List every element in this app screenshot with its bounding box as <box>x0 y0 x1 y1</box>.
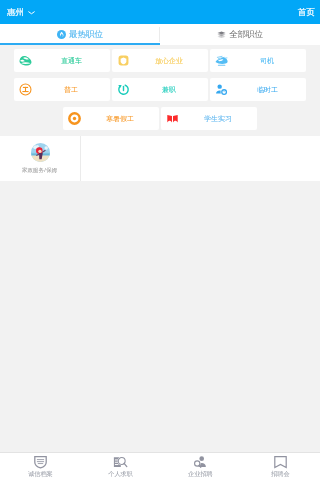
staticText: 首页 <box>298 7 315 18</box>
staticText: 直通车 <box>61 56 82 65</box>
button[interactable]: 普工 <box>14 78 110 101</box>
button[interactable]: 最热职位 <box>0 24 159 45</box>
button[interactable]: 寒暑假工 <box>63 107 159 130</box>
staticText: 放心企业 <box>155 56 183 65</box>
button[interactable]: 全部职位 <box>160 24 320 45</box>
button[interactable]: 招聘会 <box>240 453 320 480</box>
button[interactable]: 司机 <box>210 49 306 72</box>
staticText: 寒暑假工 <box>106 114 134 123</box>
staticText: 家政服务/保姆 <box>22 166 58 174</box>
button[interactable]: 惠州 <box>0 0 41 24</box>
button[interactable]: 学生实习 <box>161 107 257 130</box>
staticText: 普工 <box>64 85 78 94</box>
button[interactable]: 临时工 <box>210 78 306 101</box>
staticText: 全部职位 <box>229 29 263 40</box>
staticText: 惠州 <box>7 7 24 18</box>
button[interactable]: 兼职 <box>112 78 208 101</box>
button[interactable]: 直通车 <box>14 49 110 72</box>
button[interactable]: 企业招聘 <box>160 453 240 480</box>
button[interactable]: 首页 <box>293 0 320 24</box>
button[interactable]: 诚信档案 <box>0 453 80 480</box>
staticText: 临时工 <box>257 85 278 94</box>
staticText: 企业招聘 <box>188 470 213 478</box>
button[interactable]: 个人求职 <box>80 453 160 480</box>
staticText: 兼职 <box>162 85 176 94</box>
staticText: 诚信档案 <box>28 470 53 478</box>
staticText: 学生实习 <box>204 114 232 123</box>
staticText: 最热职位 <box>69 29 103 40</box>
button[interactable]: 放心企业 <box>112 49 208 72</box>
button[interactable]: 家政服务/保姆 <box>0 136 80 181</box>
staticText: 司机 <box>260 56 274 65</box>
staticText: 招聘会 <box>271 470 290 478</box>
staticText: 个人求职 <box>108 470 133 478</box>
